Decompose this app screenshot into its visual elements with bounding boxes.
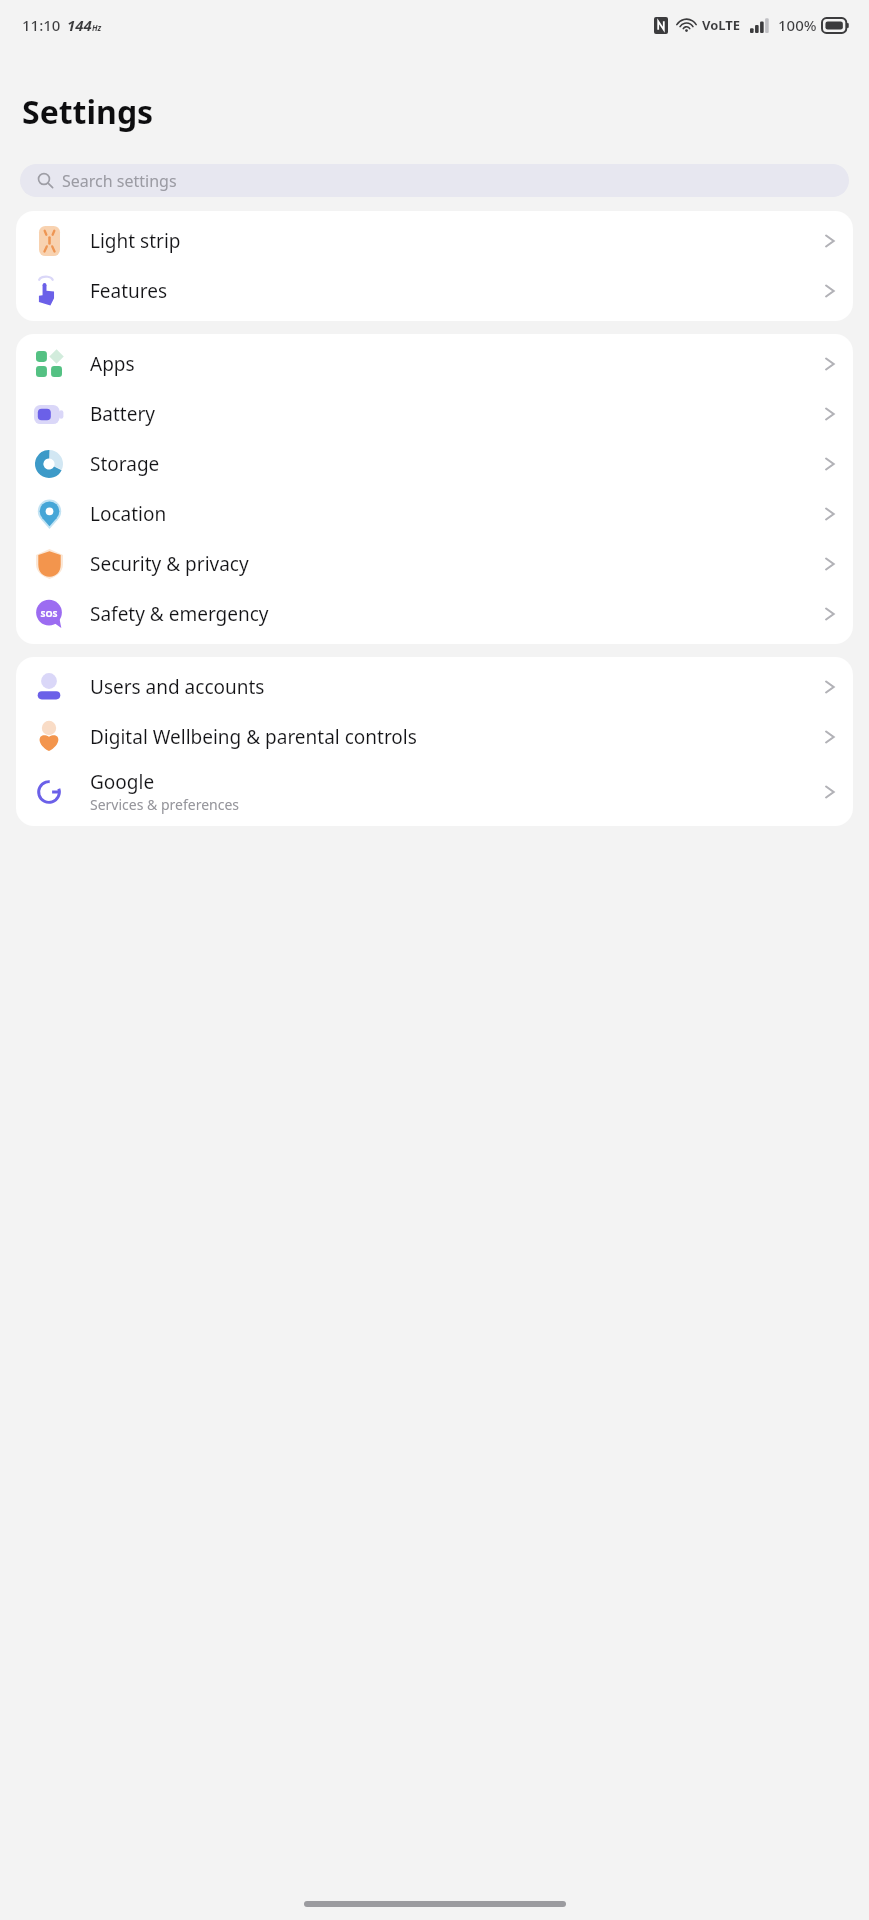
staticText: Services & preferences	[90, 795, 240, 814]
button[interactable]: Light strip	[16, 216, 853, 266]
staticText: Battery	[90, 401, 155, 427]
button[interactable]: Battery	[16, 389, 853, 439]
staticText: 11:10	[22, 15, 61, 35]
button[interactable]: SOS	[16, 589, 853, 639]
button[interactable]: Location	[16, 489, 853, 539]
staticText: Google	[90, 769, 155, 795]
staticText: 100%	[778, 15, 817, 35]
staticText: SOS	[40, 607, 58, 619]
button[interactable]: Google	[16, 762, 853, 821]
staticText: Apps	[90, 351, 135, 377]
button[interactable]: Users and accounts	[16, 662, 853, 712]
staticText: Safety & emergency	[90, 601, 269, 627]
button[interactable]: Security & privacy	[16, 539, 853, 589]
staticText: Location	[90, 501, 167, 527]
button[interactable]: Digital Wellbeing & parental controls	[16, 712, 853, 762]
staticText: Digital Wellbeing & parental controls	[90, 724, 417, 750]
staticText: 144	[67, 15, 92, 35]
button[interactable]: Storage	[16, 439, 853, 489]
button[interactable]: Features	[16, 266, 853, 316]
staticText: Hz	[92, 22, 102, 33]
staticText: Features	[90, 278, 168, 304]
staticText: Settings	[22, 90, 154, 134]
staticText: VoLTE	[702, 16, 741, 34]
staticText: Security & privacy	[90, 551, 249, 577]
staticText: Light strip	[90, 228, 181, 254]
staticText: Storage	[90, 451, 160, 477]
staticText: Search settings	[62, 170, 177, 192]
button[interactable]: Apps	[16, 339, 853, 389]
staticText: Users and accounts	[90, 674, 265, 700]
other: Search	[37, 172, 54, 189]
button[interactable]: Search	[20, 164, 849, 197]
